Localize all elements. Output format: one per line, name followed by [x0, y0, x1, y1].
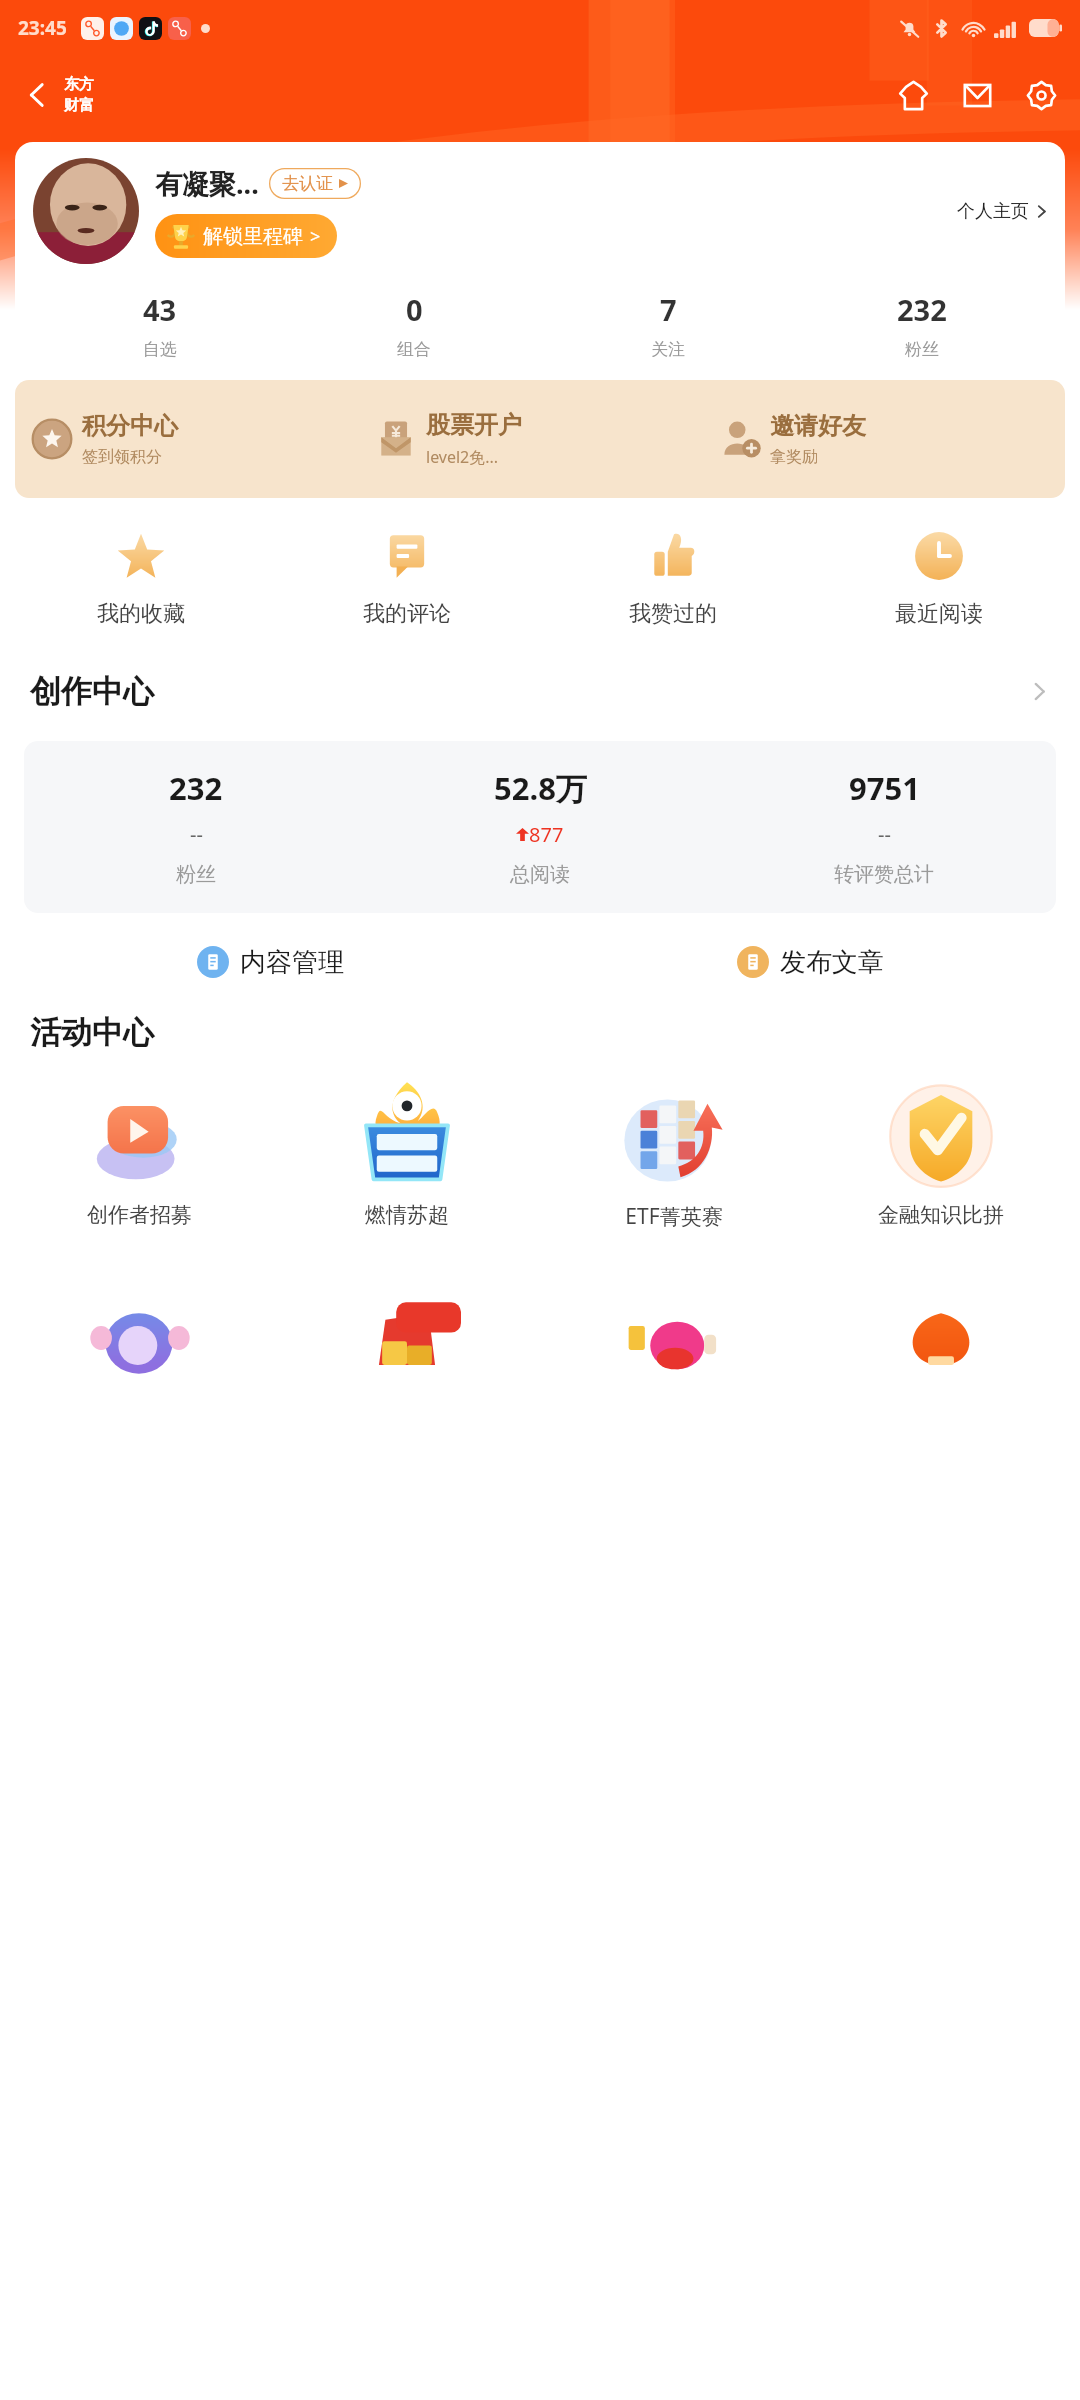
staticText: 股票开户 [426, 410, 522, 440]
staticText: 877 [529, 821, 564, 848]
staticText: 我赞过的 [629, 600, 717, 628]
staticText: 粉丝 [176, 862, 216, 887]
staticText: > [310, 224, 321, 249]
button[interactable]: Profile avatar [15, 142, 1065, 390]
staticText: 关注 [651, 339, 685, 360]
button[interactable]: ETF菁英赛 [540, 1080, 807, 1231]
button[interactable]: 积分中心 [29, 380, 373, 498]
staticText: 财富 [64, 96, 94, 115]
staticText: 解锁里程碑 [203, 224, 303, 249]
staticText: 去认证 [282, 173, 333, 194]
button[interactable]: 52.8万 [368, 767, 712, 887]
staticText: 我的评论 [363, 600, 451, 628]
button[interactable]: Activity [6, 1257, 273, 1367]
button[interactable]: 9751 [712, 767, 1056, 887]
button[interactable]: Activity [807, 1257, 1074, 1367]
staticText: 组合 [397, 339, 431, 360]
staticText: 燃情苏超 [365, 1202, 449, 1228]
staticText: 我的收藏 [97, 600, 185, 628]
staticText: 52.8万 [494, 767, 587, 809]
staticText: 总阅读 [510, 862, 570, 887]
staticText: 232 [169, 767, 223, 809]
staticText: 创作者招募 [87, 1202, 192, 1228]
button[interactable]: Activity [540, 1257, 807, 1367]
button[interactable]: Back [14, 72, 60, 118]
button[interactable]: Messages [952, 70, 1002, 120]
staticText: 0 [406, 290, 423, 329]
button[interactable]: 232 [24, 767, 368, 887]
button[interactable]: 创作中心 [0, 668, 1080, 715]
staticText: 232 [897, 290, 947, 329]
button[interactable]: Shop [888, 70, 938, 120]
staticText: 9751 [849, 767, 920, 809]
button[interactable]: 43 [33, 288, 287, 362]
button[interactable]: Settings [1016, 70, 1066, 120]
button[interactable]: 燃情苏超 [273, 1080, 540, 1228]
staticText: 活动中心 [30, 1013, 154, 1052]
button[interactable]: 邀请好友 [717, 380, 1061, 498]
button[interactable]: 7 [541, 288, 795, 362]
staticText: 最近阅读 [895, 600, 983, 628]
button[interactable]: Profile avatar [33, 158, 139, 264]
button[interactable]: 我的收藏 [8, 524, 274, 634]
button[interactable]: 最近阅读 [806, 524, 1072, 634]
button[interactable]: 个人主页 [957, 194, 1049, 229]
button[interactable]: 232 [795, 288, 1049, 362]
button[interactable]: 我的评论 [274, 524, 540, 634]
button[interactable]: 去认证 [269, 168, 361, 199]
staticText: 签到领积分 [82, 447, 162, 467]
staticText: 23:45 [18, 15, 67, 41]
button[interactable]: 发布文章 [540, 937, 1080, 987]
button[interactable]: 股票开户 [373, 380, 717, 498]
button[interactable]: 内容管理 [0, 937, 540, 987]
button[interactable]: Activity [273, 1257, 540, 1367]
staticText: 邀请好友 [770, 411, 866, 441]
staticText: 发布文章 [780, 946, 884, 979]
staticText: 43 [143, 290, 177, 329]
staticText: 7 [660, 290, 677, 329]
button[interactable]: 0 [287, 288, 541, 362]
button[interactable]: 我赞过的 [540, 524, 806, 634]
staticText: 东方 [64, 75, 94, 94]
staticText: 自选 [143, 339, 177, 360]
staticText: 个人主页 [957, 200, 1029, 223]
staticText: 转评赞总计 [834, 862, 934, 887]
button[interactable]: 金融知识比拼 [807, 1080, 1074, 1228]
staticText: 创作中心 [30, 672, 154, 711]
staticText: 内容管理 [240, 946, 344, 979]
staticText: 有凝聚... [155, 165, 259, 202]
staticText: level2免... [426, 446, 499, 468]
button[interactable]: 创作者招募 [6, 1080, 273, 1228]
button[interactable]: 解锁里程碑 [155, 214, 337, 258]
staticText: 金融知识比拼 [878, 1202, 1004, 1228]
staticText: 积分中心 [82, 411, 178, 441]
staticText: ETF菁英赛 [625, 1202, 723, 1231]
staticText: -- [190, 821, 203, 848]
staticText: -- [878, 821, 891, 848]
staticText: 粉丝 [905, 339, 939, 360]
staticText: 拿奖励 [770, 447, 818, 467]
